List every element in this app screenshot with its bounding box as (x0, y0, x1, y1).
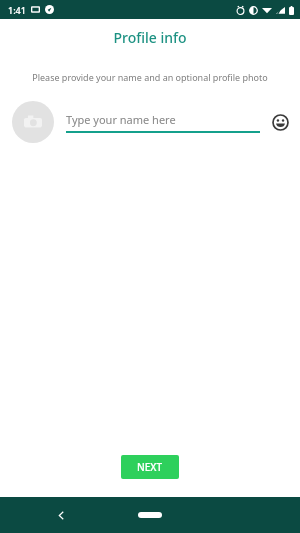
button[interactable]: NEXT (121, 455, 179, 479)
staticText: NEXT (137, 460, 163, 474)
button[interactable]: Add profile photo (12, 101, 54, 143)
staticText: 1:41 (8, 4, 26, 16)
button[interactable]: Type your name here (66, 112, 260, 133)
staticText: Profile info (113, 28, 187, 47)
button[interactable]: Emoji (268, 110, 292, 134)
staticText: Type your name here (66, 112, 176, 127)
button[interactable]: Home (138, 512, 162, 518)
staticText: Please provide your name and an optional… (32, 71, 268, 83)
button[interactable]: Back (50, 504, 72, 526)
